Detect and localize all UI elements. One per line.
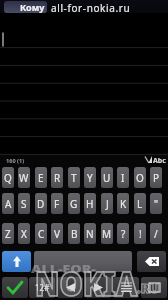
button[interactable]: Y <box>84 167 96 188</box>
staticText: Z <box>5 227 11 241</box>
button[interactable]: I <box>117 167 129 188</box>
button[interactable]: " <box>150 193 162 214</box>
staticText: G <box>70 197 78 211</box>
button[interactable]: ! <box>134 223 146 244</box>
button[interactable]: Backspace <box>137 251 166 272</box>
button[interactable]: Cursor left <box>57 277 83 298</box>
button[interactable]: Z <box>2 223 14 244</box>
button[interactable]: OK <box>2 277 28 298</box>
button[interactable]: P <box>150 167 162 188</box>
button[interactable]: H <box>84 193 96 214</box>
button[interactable]: / <box>150 223 162 244</box>
button[interactable]: D <box>35 193 47 214</box>
staticText: all-for-nokia.ru <box>51 1 131 15</box>
staticText: F <box>54 197 60 211</box>
button[interactable]: J <box>101 193 113 214</box>
button[interactable]: X <box>18 223 30 244</box>
button[interactable]: C <box>35 223 47 244</box>
button[interactable]: A <box>2 193 14 214</box>
button[interactable]: F <box>51 193 63 214</box>
button[interactable]: V <box>51 223 63 244</box>
staticText: N <box>86 227 94 241</box>
staticText: U <box>103 171 111 185</box>
button[interactable]: E <box>35 167 47 188</box>
staticText: L <box>137 197 143 211</box>
staticText: O <box>136 171 144 185</box>
staticText: S <box>21 197 27 211</box>
staticText: B <box>71 227 78 241</box>
staticText: ? <box>121 227 126 241</box>
staticText: D <box>37 197 45 211</box>
staticText: Abc <box>153 156 166 166</box>
staticText: P <box>153 171 160 185</box>
button[interactable]: Menu <box>113 277 139 298</box>
staticText: K <box>120 197 127 211</box>
button[interactable]: T <box>68 167 80 188</box>
button[interactable]: B <box>68 223 80 244</box>
button[interactable]: M <box>101 223 113 244</box>
button[interactable]: Cursor right <box>85 277 111 298</box>
staticText: A <box>5 197 12 211</box>
staticText: Q <box>4 171 12 185</box>
staticText: C <box>38 227 45 241</box>
staticText: J <box>106 197 109 211</box>
button[interactable]: G <box>68 193 80 214</box>
staticText: .RU <box>137 279 160 297</box>
staticText: Y <box>87 171 93 185</box>
button[interactable]: U <box>101 167 113 188</box>
staticText: 160 (1) <box>6 157 25 165</box>
staticText: V <box>54 227 60 241</box>
staticText: NOKIA <box>35 260 138 300</box>
staticText: E <box>38 171 44 185</box>
button[interactable]: N <box>84 223 96 244</box>
button[interactable]: K <box>117 193 129 214</box>
button[interactable]: ? <box>117 223 129 244</box>
staticText: NOKIA <box>35 260 138 300</box>
button[interactable]: R <box>51 167 63 188</box>
button[interactable]: W <box>18 167 30 188</box>
staticText: 12# <box>35 282 50 293</box>
staticText: ! <box>139 227 142 241</box>
button[interactable]: L <box>134 193 146 214</box>
staticText: ALL-FOR- <box>31 262 97 276</box>
staticText: T <box>71 171 77 185</box>
staticText: X <box>21 227 27 241</box>
staticText: Кому <box>20 1 45 13</box>
staticText: H <box>86 197 94 211</box>
button[interactable]: S <box>18 193 30 214</box>
staticText: I <box>121 171 125 185</box>
button[interactable]: Shift <box>2 251 31 272</box>
staticText: M <box>102 227 112 241</box>
button[interactable]: Hide keyboard <box>141 277 167 298</box>
button[interactable]: 12# <box>29 277 55 298</box>
staticText: / <box>154 227 158 241</box>
staticText: W <box>19 171 29 185</box>
button[interactable]: Space <box>34 251 132 272</box>
staticText: " <box>154 197 159 211</box>
staticText: R <box>54 171 61 185</box>
button[interactable]: Кому <box>4 1 47 13</box>
button[interactable]: Q <box>2 167 14 188</box>
button[interactable]: O <box>134 167 146 188</box>
